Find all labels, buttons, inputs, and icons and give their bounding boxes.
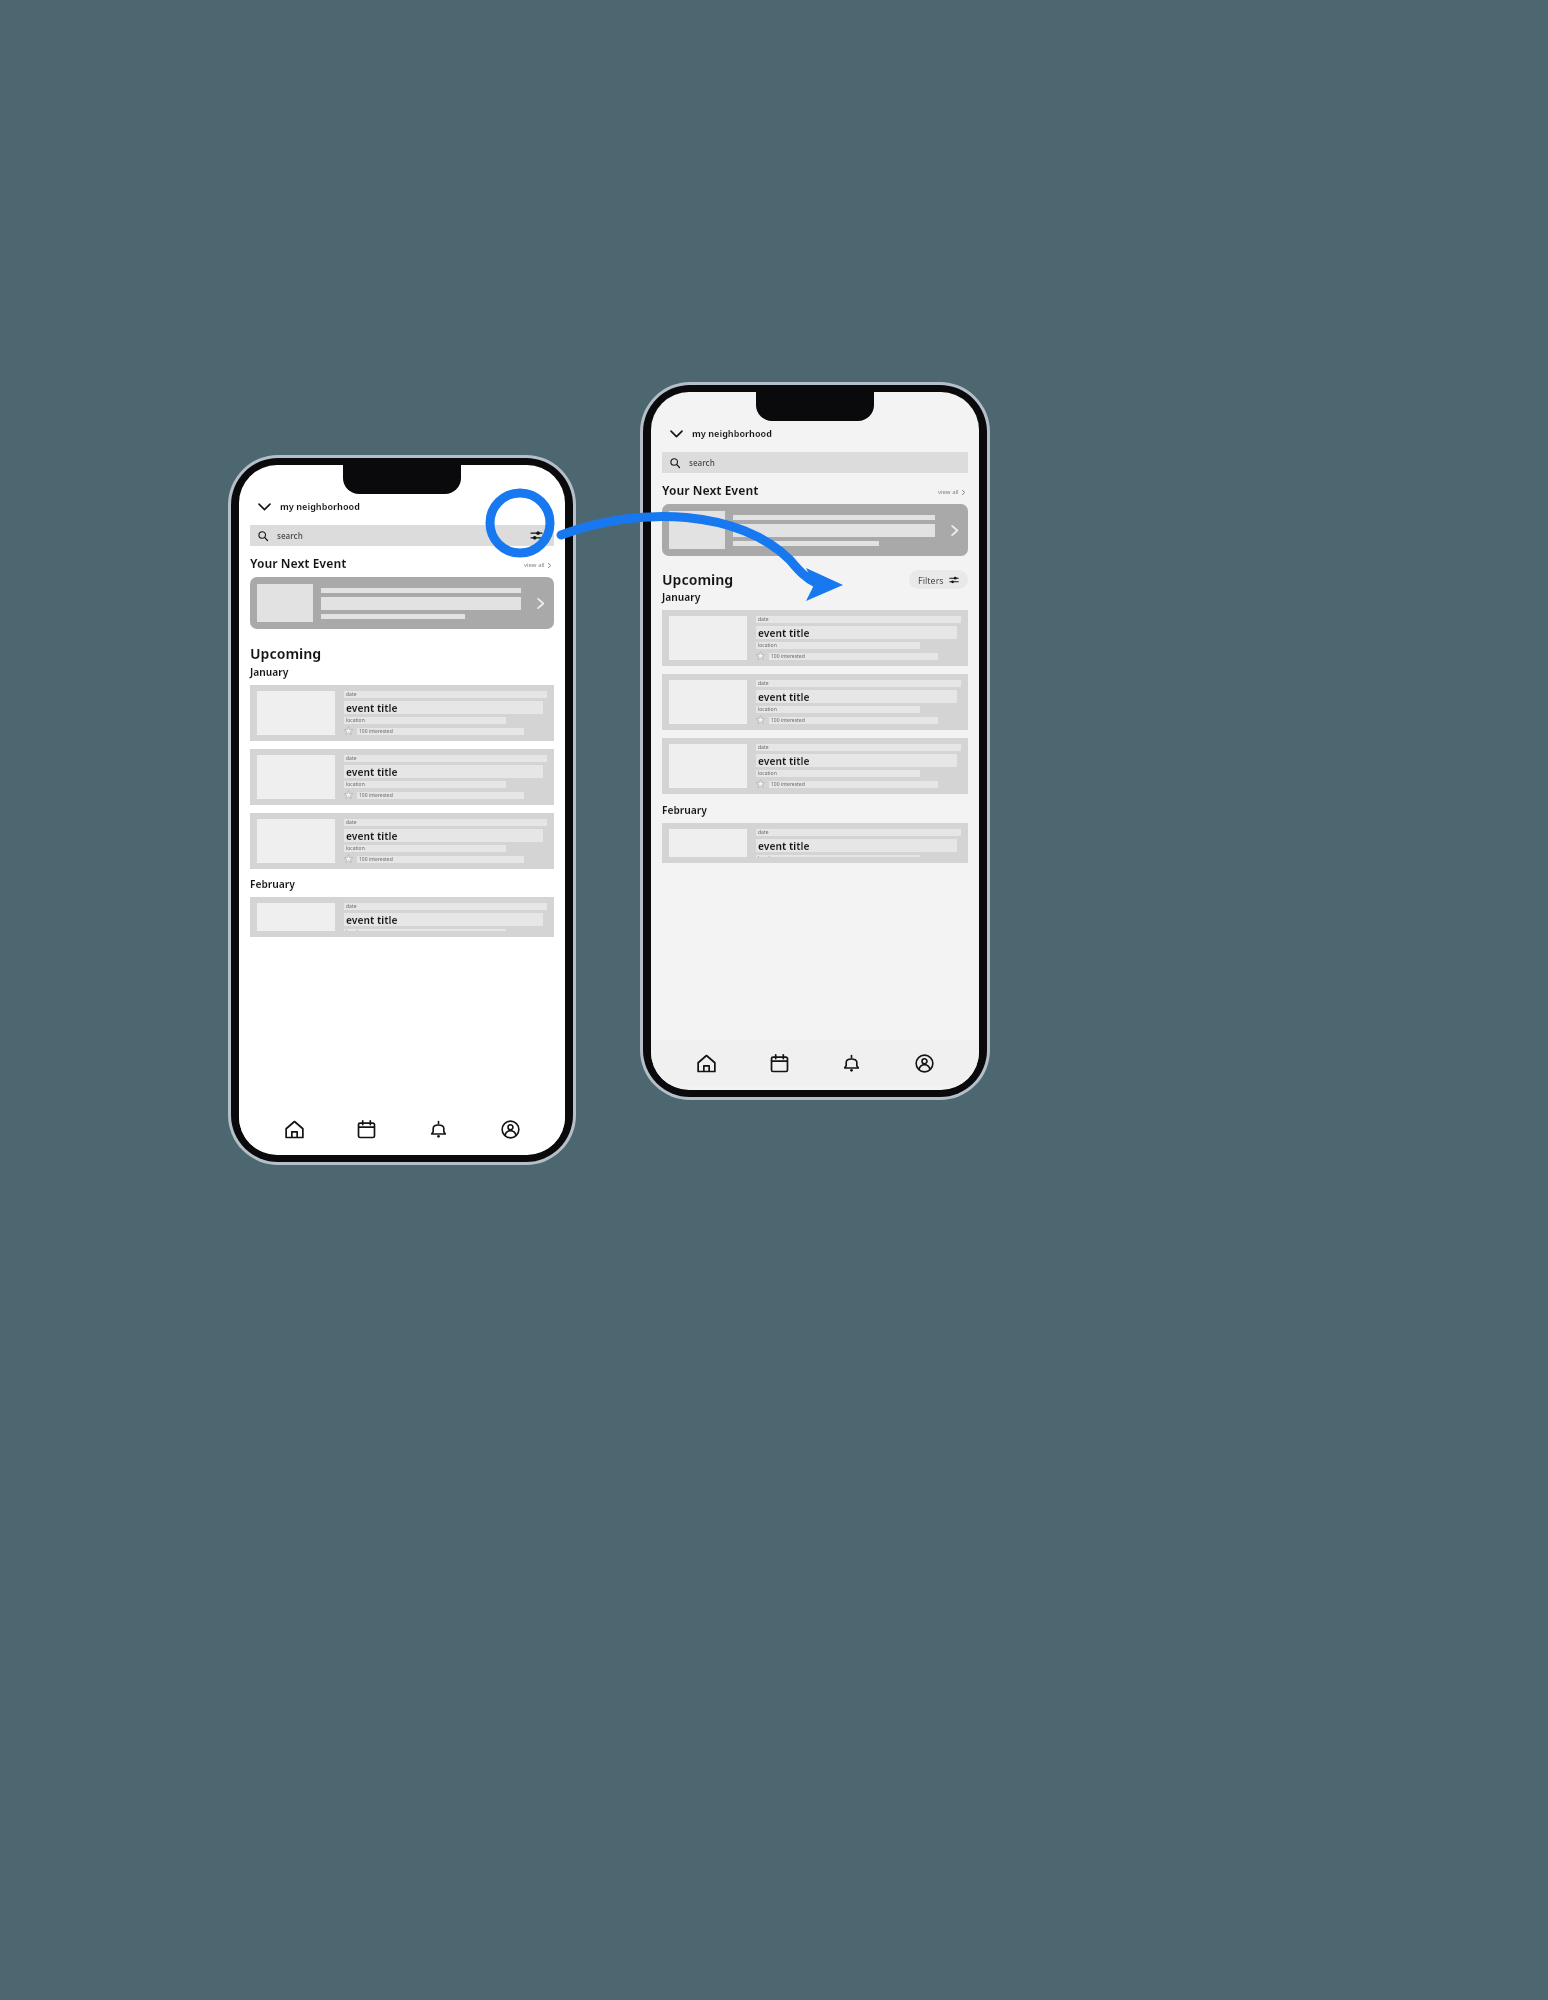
- staticText: date: [758, 616, 769, 623]
- button[interactable]: date: [257, 691, 547, 735]
- staticText: Upcoming: [662, 570, 734, 589]
- staticText: location: [346, 929, 365, 931]
- button[interactable]: Notifications: [421, 1112, 455, 1146]
- staticText: date: [758, 829, 769, 836]
- button[interactable]: date: [669, 829, 961, 857]
- staticText: date: [346, 691, 357, 698]
- button[interactable]: Open next event: [669, 504, 961, 556]
- staticText: event title: [346, 913, 398, 926]
- button[interactable]: Open next event: [257, 577, 547, 629]
- staticText: 100 interested: [771, 781, 805, 788]
- staticText: Upcoming: [250, 644, 322, 663]
- staticText: search: [689, 457, 715, 468]
- staticText: event title: [758, 626, 810, 639]
- button[interactable]: view all: [522, 559, 554, 571]
- staticText: search: [277, 530, 303, 541]
- staticText: view all: [524, 561, 545, 569]
- button[interactable]: Open next event: [533, 596, 547, 610]
- button[interactable]: Home: [277, 1112, 311, 1146]
- button[interactable]: Profile: [907, 1046, 941, 1080]
- staticText: location: [346, 717, 365, 724]
- staticText: date: [758, 744, 769, 751]
- button[interactable]: search: [258, 525, 510, 546]
- staticText: Filters: [918, 574, 944, 586]
- staticText: event title: [346, 765, 398, 778]
- button[interactable]: Notifications: [834, 1046, 868, 1080]
- staticText: location: [346, 781, 365, 788]
- staticText: my neighborhood: [692, 427, 772, 439]
- button[interactable]: Filters: [518, 525, 554, 546]
- button[interactable]: Profile: [493, 1112, 527, 1146]
- staticText: Your Next Event: [662, 482, 759, 498]
- staticText: February: [250, 877, 295, 891]
- button[interactable]: Home: [689, 1046, 723, 1080]
- staticText: event title: [758, 754, 810, 767]
- staticText: 100 interested: [771, 717, 805, 724]
- button[interactable]: date: [257, 755, 547, 799]
- staticText: 100 interested: [359, 856, 393, 863]
- staticText: location: [346, 845, 365, 852]
- staticText: February: [662, 803, 707, 817]
- staticText: date: [758, 680, 769, 687]
- staticText: January: [250, 665, 289, 679]
- staticText: date: [346, 903, 357, 910]
- button[interactable]: date: [669, 744, 961, 788]
- staticText: date: [346, 819, 357, 826]
- button[interactable]: search: [670, 452, 960, 473]
- staticText: location: [758, 770, 777, 777]
- button[interactable]: Open next event: [947, 523, 961, 537]
- staticText: date: [346, 755, 357, 762]
- staticText: location: [758, 855, 777, 857]
- staticText: 100 interested: [359, 728, 393, 735]
- button[interactable]: date: [257, 819, 547, 863]
- staticText: January: [662, 590, 701, 604]
- staticText: event title: [346, 829, 398, 842]
- staticText: event title: [346, 701, 398, 714]
- staticText: location: [758, 706, 777, 713]
- button[interactable]: Calendar: [762, 1046, 796, 1080]
- staticText: 100 interested: [359, 792, 393, 799]
- button[interactable]: date: [669, 680, 961, 724]
- staticText: event title: [758, 690, 810, 703]
- button[interactable]: Calendar: [349, 1112, 383, 1146]
- button[interactable]: date: [669, 616, 961, 660]
- staticText: event title: [758, 839, 810, 852]
- button[interactable]: view all: [936, 486, 968, 498]
- staticText: my neighborhood: [280, 500, 360, 512]
- button[interactable]: Expand neighborhood: [255, 497, 273, 515]
- staticText: Your Next Event: [250, 555, 347, 571]
- staticText: location: [758, 642, 777, 649]
- button[interactable]: Expand neighborhood: [667, 424, 685, 442]
- button[interactable]: date: [257, 903, 547, 931]
- staticText: 100 interested: [771, 653, 805, 660]
- button[interactable]: Filters: [918, 570, 959, 589]
- staticText: view all: [938, 488, 959, 496]
